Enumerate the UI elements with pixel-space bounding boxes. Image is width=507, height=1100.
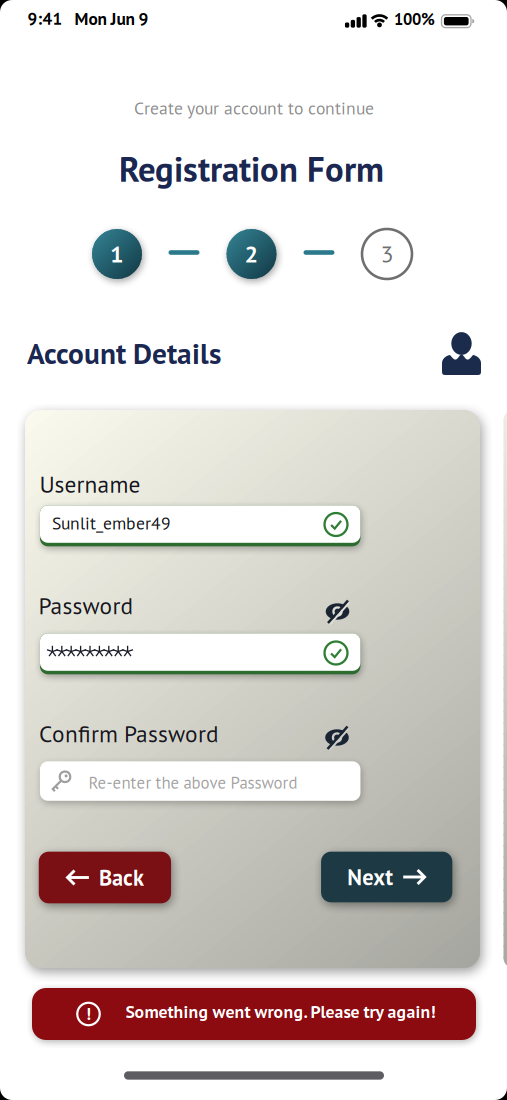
button[interactable]: Password (40, 633, 360, 674)
staticText: Mon Jun 9 (74, 7, 148, 30)
staticText: Create your account to continue (134, 97, 374, 119)
button[interactable]: Next (321, 852, 452, 902)
staticText: 9:41 (27, 7, 62, 30)
staticText: Password (38, 590, 133, 621)
staticText: Something went wrong. Please try again! (125, 1000, 435, 1023)
button[interactable]: Step 1 (92, 229, 142, 279)
staticText: Back (99, 863, 144, 892)
button[interactable]: Back (39, 852, 171, 903)
button[interactable]: Confirm Password (40, 761, 360, 802)
staticText: Account Details (27, 334, 221, 372)
button[interactable]: Username (40, 505, 360, 546)
staticText: Next (347, 862, 393, 891)
staticText: 100% (394, 8, 435, 30)
staticText: 1 (110, 238, 124, 269)
button[interactable]: Step 3 (362, 229, 412, 279)
staticText: 3 (380, 238, 393, 269)
button[interactable]: Step 2 (226, 229, 276, 279)
staticText: ! (86, 1002, 91, 1025)
staticText: Sunlit_ember49 (52, 512, 171, 534)
staticText: Registration Form (119, 147, 384, 191)
staticText: 2 (244, 238, 258, 269)
button[interactable]: Show password (324, 598, 350, 624)
staticText: Re-enter the above Password (88, 772, 297, 793)
staticText: Confirm Password (39, 718, 219, 749)
button[interactable]: Show password (324, 724, 350, 750)
staticText: Username (39, 469, 140, 499)
